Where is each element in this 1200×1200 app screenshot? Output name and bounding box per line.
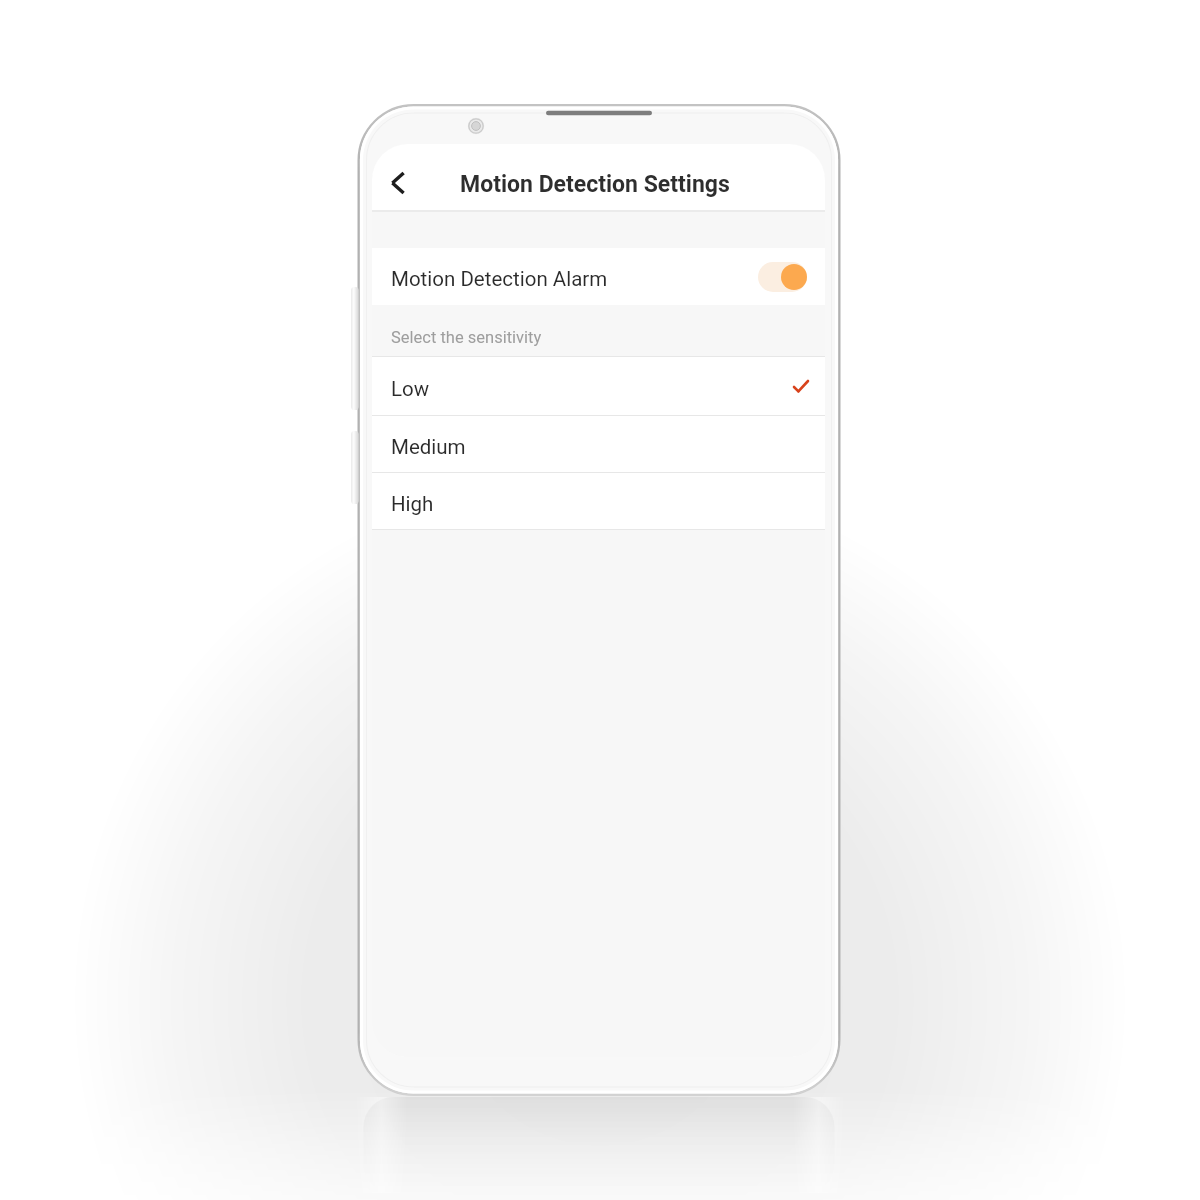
button[interactable]: Motion detection alarm toggle bbox=[758, 262, 807, 292]
button[interactable]: Back bbox=[374, 159, 422, 207]
button[interactable]: Medium bbox=[372, 416, 825, 472]
button[interactable]: Motion Detection Alarm bbox=[372, 248, 825, 305]
button[interactable]: Low bbox=[372, 357, 825, 415]
staticText: Motion Detection Alarm bbox=[391, 267, 608, 291]
staticText: Low bbox=[391, 377, 430, 401]
staticText: Motion Detection Settings bbox=[460, 171, 730, 198]
staticText: Medium bbox=[391, 435, 466, 459]
staticText: High bbox=[391, 492, 434, 516]
staticText: Select the sensitivity bbox=[391, 328, 542, 347]
button[interactable]: High bbox=[372, 473, 825, 529]
